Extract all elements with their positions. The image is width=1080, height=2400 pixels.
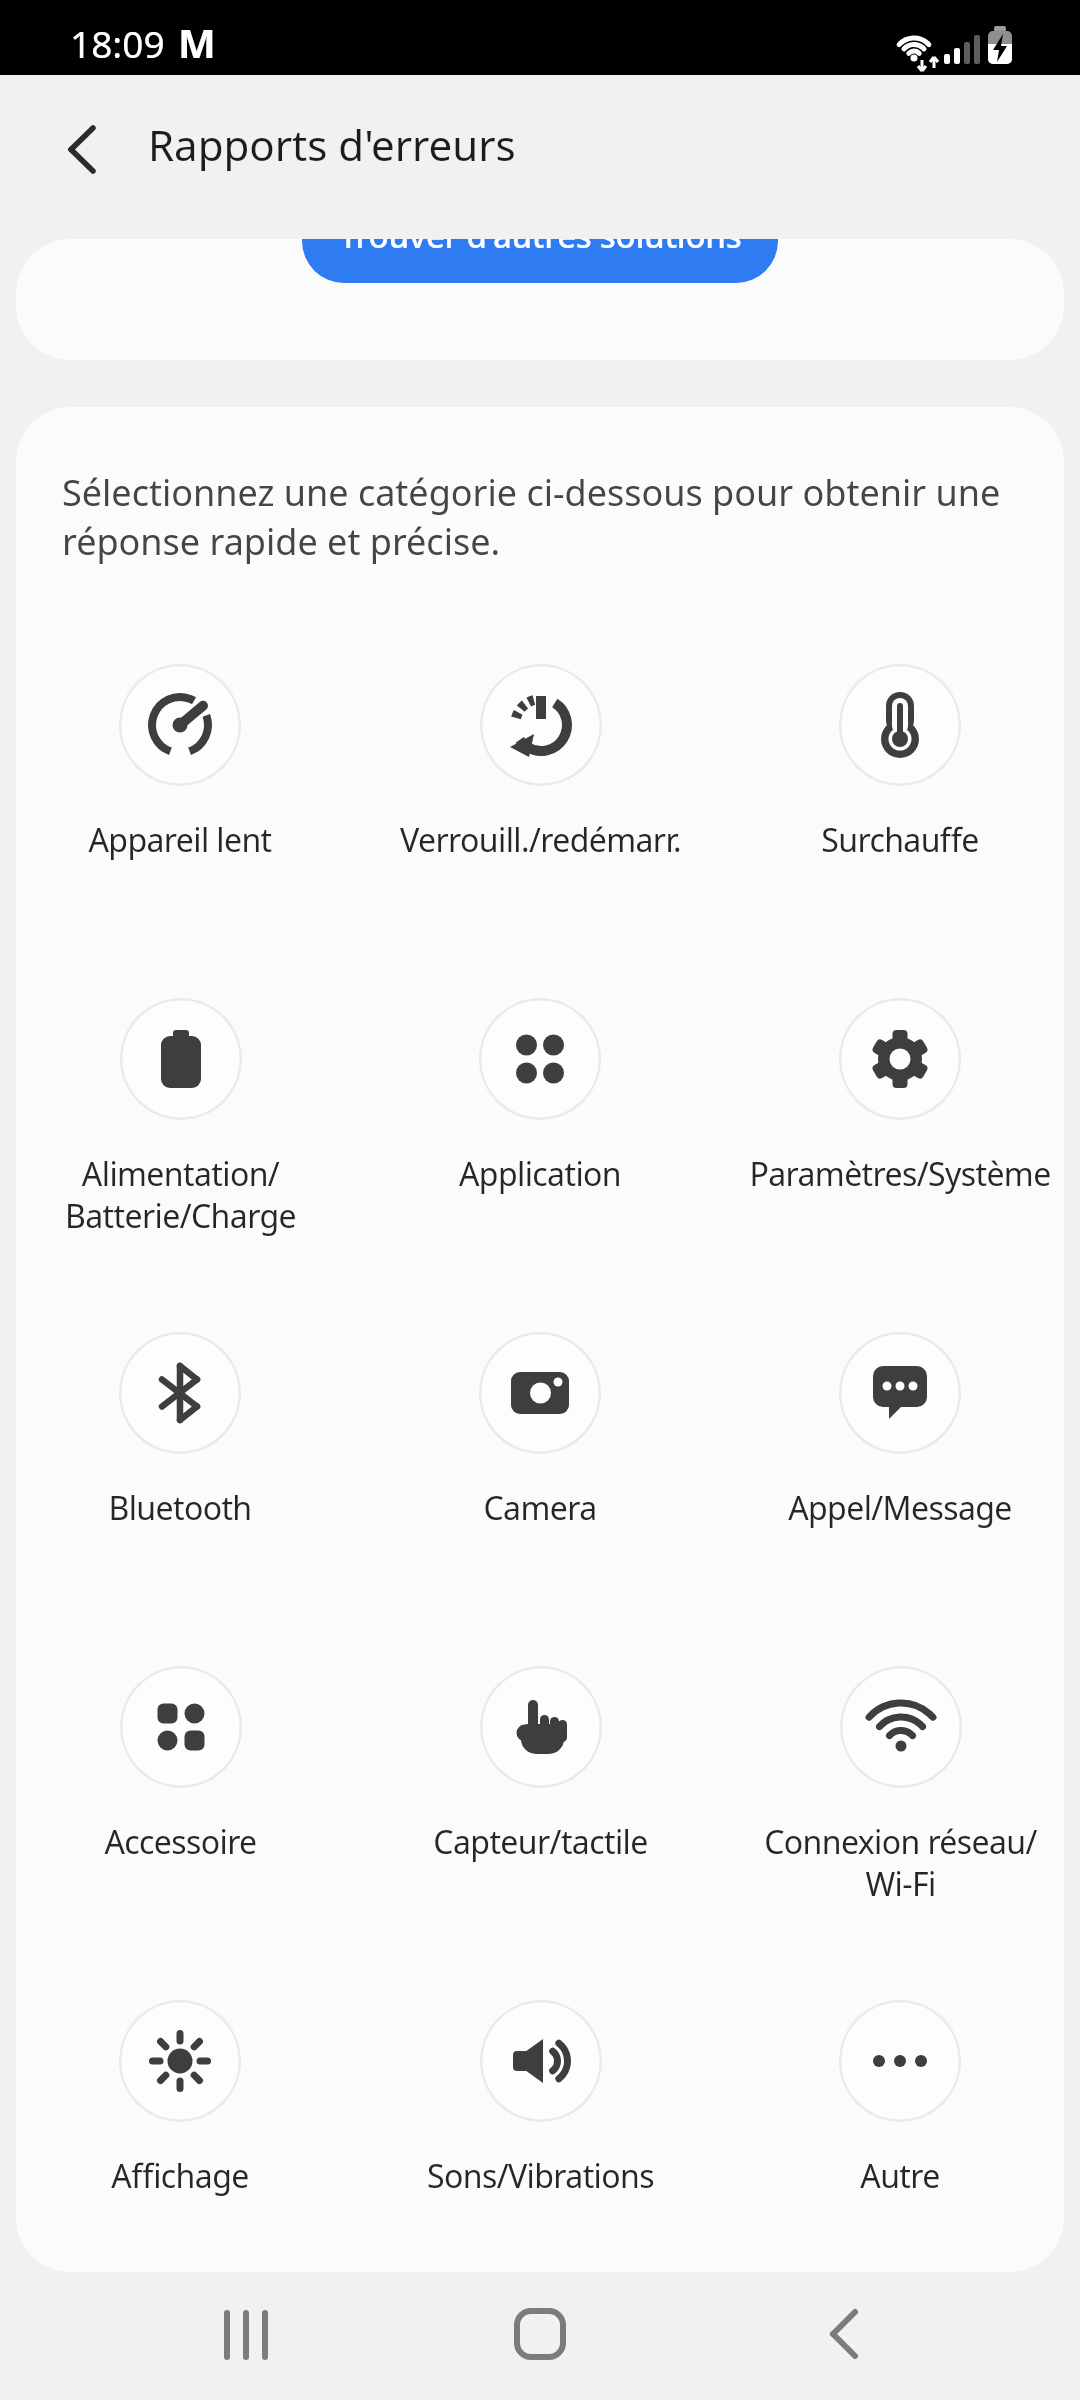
staticText: Surchauffe <box>821 818 979 862</box>
staticText: Alimentation/ Batterie/Charge <box>65 1152 296 1237</box>
button[interactable]: Surchauffe <box>700 664 1080 944</box>
button[interactable] <box>48 117 114 183</box>
staticText: Rapports d'erreurs <box>148 116 516 173</box>
staticText: Trouver d'autres solutions <box>339 239 742 258</box>
button[interactable]: Paramètres/Système <box>700 998 1080 1278</box>
button[interactable]: Accessoire <box>0 1666 380 1946</box>
staticText: Sons/Vibrations <box>427 2154 654 2198</box>
staticText: Appareil lent <box>88 818 272 862</box>
staticText: 18:09 <box>70 18 165 68</box>
staticText: Capteur/tactile <box>433 1820 648 1864</box>
staticText: Autre <box>860 2154 940 2198</box>
staticText: Connexion réseau/ Wi-Fi <box>764 1820 1037 1905</box>
staticText: Camera <box>483 1486 597 1530</box>
button[interactable]: Appareil lent <box>0 664 380 944</box>
button[interactable]: Alimentation/ Batterie/Charge <box>0 998 380 1278</box>
staticText: Appel/Message <box>788 1486 1012 1530</box>
staticText: M <box>178 15 216 69</box>
button[interactable]: Appel/Message <box>700 1332 1080 1612</box>
staticText: Affichage <box>111 2154 249 2198</box>
staticText: Verrouill./redémarr. <box>400 818 681 862</box>
button[interactable]: Camera <box>340 1332 740 1612</box>
button[interactable]: Trouver d'autres solutions <box>302 239 778 283</box>
staticText: Paramètres/Système <box>749 1152 1051 1196</box>
button[interactable] <box>182 2270 302 2400</box>
button[interactable]: Capteur/tactile <box>340 1666 740 1946</box>
staticText: Application <box>459 1152 621 1196</box>
button[interactable]: Application <box>340 998 740 1278</box>
button[interactable] <box>785 2270 905 2400</box>
button[interactable]: Autre <box>700 2000 1080 2280</box>
button[interactable]: Affichage <box>0 2000 380 2280</box>
button[interactable]: Sons/Vibrations <box>340 2000 740 2280</box>
button[interactable]: Verrouill./redémarr. <box>340 664 740 944</box>
button[interactable] <box>480 2270 600 2400</box>
button[interactable]: Connexion réseau/ Wi-Fi <box>700 1666 1080 1946</box>
staticText: Sélectionnez une catégorie ci-dessous po… <box>62 468 1001 566</box>
staticText: Bluetooth <box>108 1486 252 1530</box>
button[interactable]: Bluetooth <box>0 1332 380 1612</box>
staticText: Accessoire <box>104 1820 257 1864</box>
